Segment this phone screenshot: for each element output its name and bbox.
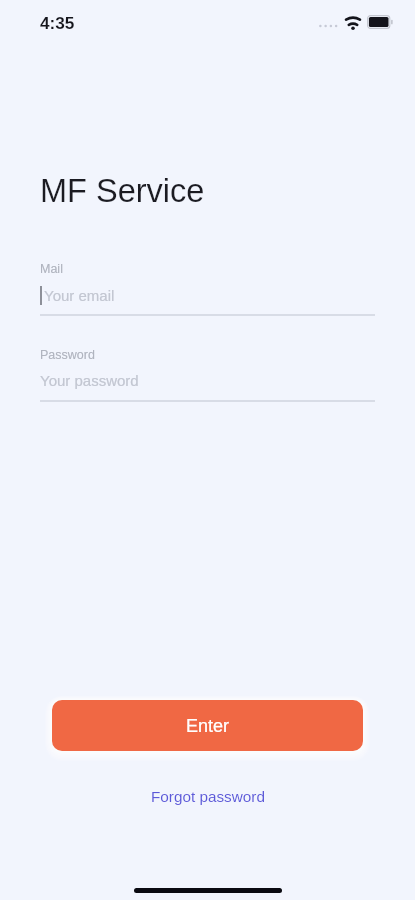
- staticText: Mail: [40, 262, 63, 276]
- other: Cellular signal: [318, 22, 339, 30]
- staticText: MF Service: [40, 173, 205, 209]
- button[interactable]: Forgot password: [141, 784, 275, 809]
- button[interactable]: Enter: [52, 700, 363, 751]
- staticText: Forgot password: [151, 788, 265, 805]
- staticText: Your password: [40, 372, 139, 389]
- other: Wi-Fi: [344, 16, 362, 30]
- staticText: Your email: [44, 287, 115, 304]
- staticText: 4:35: [40, 13, 75, 32]
- button[interactable]: Password: [40, 348, 375, 402]
- other: Battery: [367, 15, 394, 29]
- staticText: Enter: [186, 716, 230, 736]
- staticText: Password: [40, 348, 95, 362]
- button[interactable]: Mail: [40, 262, 375, 316]
